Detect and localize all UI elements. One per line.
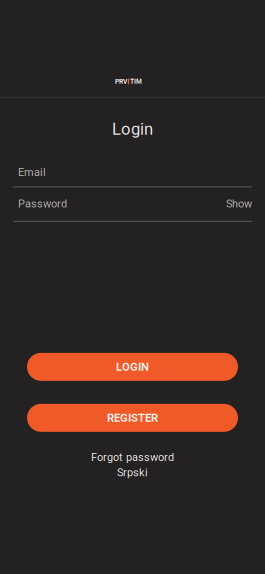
staticText: PRV xyxy=(115,77,127,85)
staticText: Show xyxy=(226,197,252,210)
staticText: LOGIN xyxy=(116,360,149,373)
staticText: TIM xyxy=(130,77,142,85)
staticText: Forgot password xyxy=(91,451,174,464)
button[interactable]: LOGIN xyxy=(27,353,238,381)
button[interactable]: Show xyxy=(226,197,252,210)
staticText: REGISTER xyxy=(107,411,158,424)
button[interactable]: REGISTER xyxy=(27,404,238,432)
button[interactable]: Forgot password xyxy=(91,451,174,464)
button[interactable]: Srpski xyxy=(117,466,148,479)
staticText: Login xyxy=(112,119,153,139)
staticText: Email xyxy=(18,166,46,179)
staticText: Password xyxy=(18,197,67,210)
staticText: Srpski xyxy=(117,466,148,479)
